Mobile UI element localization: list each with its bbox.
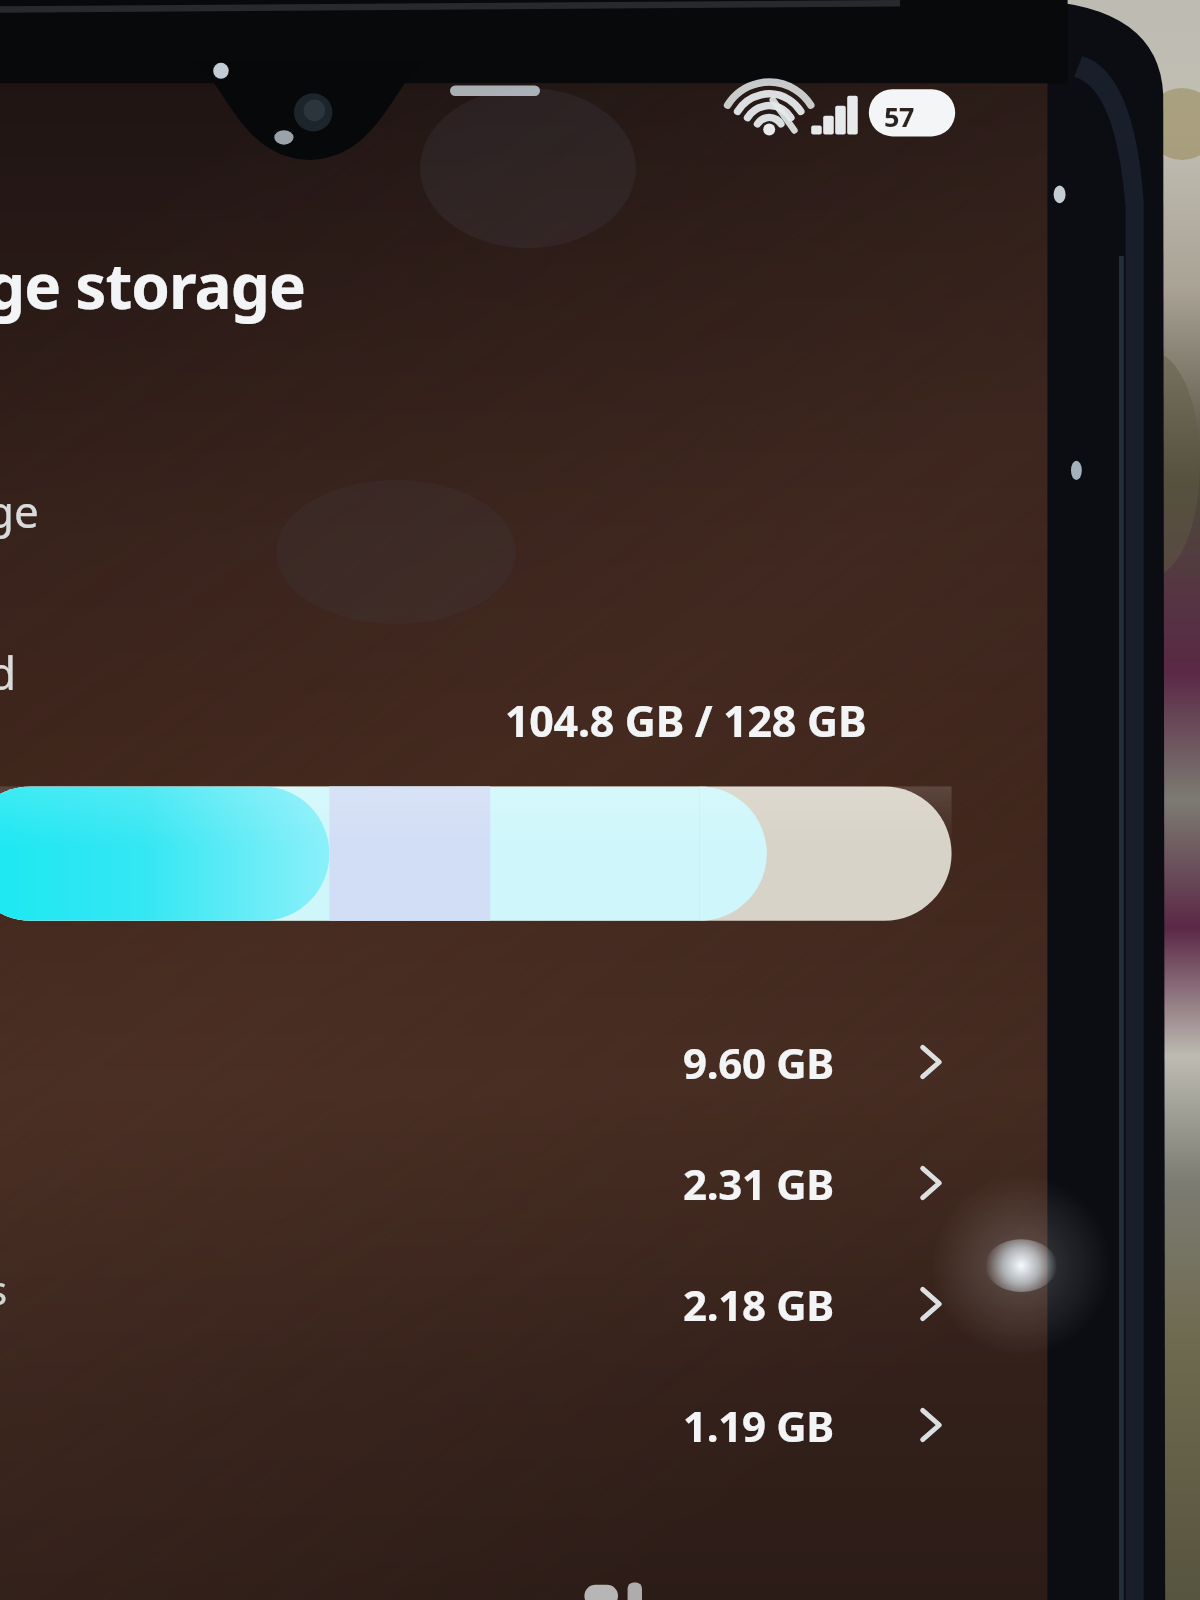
- staticText: ge: [0, 481, 39, 541]
- staticText: 104.8 GB / 128 GB: [505, 691, 867, 750]
- staticText: s: [0, 1262, 8, 1316]
- button[interactable]: Images storage detail: [560, 1131, 980, 1235]
- button[interactable]: Apps storage detail: [560, 1010, 980, 1114]
- staticText: d: [0, 641, 17, 704]
- staticText: 2.31 GB: [682, 1155, 834, 1212]
- staticText: ge storage: [0, 243, 305, 327]
- staticText: 57: [884, 98, 914, 135]
- button[interactable]: Other storage detail: [560, 1373, 980, 1477]
- staticText: 1.19 GB: [682, 1397, 834, 1454]
- staticText: 9.60 GB: [682, 1034, 834, 1091]
- staticText: 2.18 GB: [682, 1276, 834, 1333]
- button[interactable]: Videos storage detail: [560, 1252, 980, 1356]
